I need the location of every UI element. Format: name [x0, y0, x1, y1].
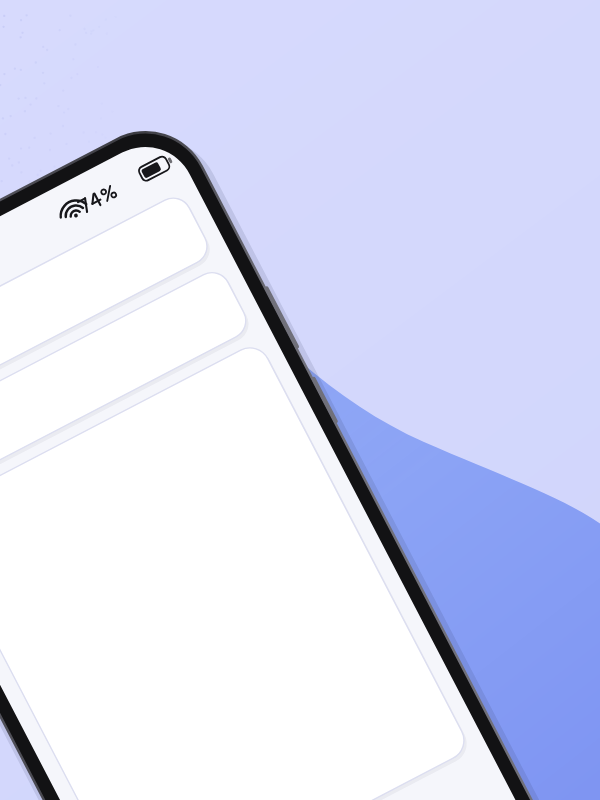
button[interactable]: Primary action button	[250, 732, 415, 794]
button[interactable]: List card one	[0, 158, 170, 250]
button[interactable]: Main content card	[0, 245, 340, 665]
